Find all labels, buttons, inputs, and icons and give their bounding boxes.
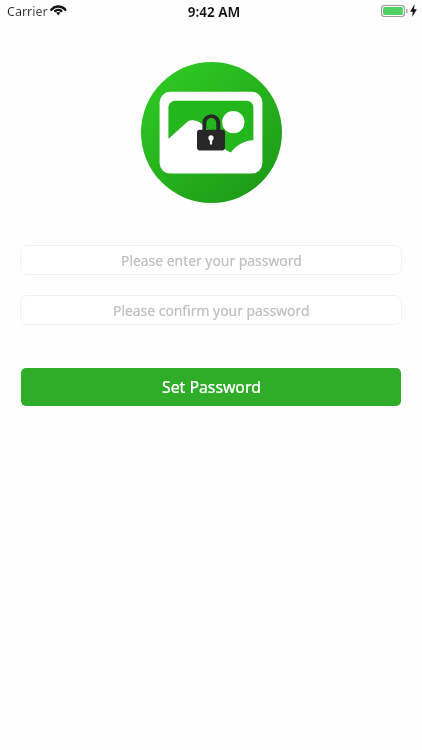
staticText: Set Password [162,376,261,398]
button[interactable]: Set Password [21,368,401,406]
button[interactable]: Please enter your password [20,245,402,275]
other: Battery charging [381,5,408,17]
staticText: Please confirm your password [113,301,310,320]
button[interactable]: Please confirm your password [20,295,402,325]
other: Charging [410,4,417,17]
staticText: Carrier [7,3,48,20]
staticText: 9:42 AM [3,3,422,21]
staticText: Please enter your password [121,251,302,270]
other: Secure photo vault logo [141,62,282,203]
other: Wi-Fi signal [49,2,68,18]
